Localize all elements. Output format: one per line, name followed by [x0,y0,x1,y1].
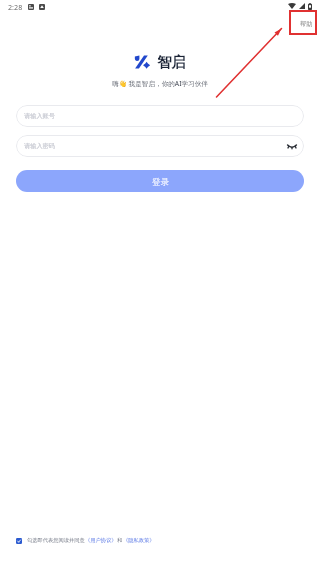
button[interactable]: 登录 [16,170,304,192]
button[interactable]: 请输入账号 [16,105,304,127]
staticText: 帮助 [300,20,313,28]
staticText: 请输入密码 [24,142,55,150]
staticText: 2:28 [8,2,23,12]
staticText: 请输入账号 [24,112,55,120]
button[interactable]: 《用户协议》 [85,537,117,544]
staticText: 智启 [157,53,186,71]
button[interactable]: Show password [286,140,298,152]
button[interactable]: 请输入密码 [16,135,304,157]
staticText: 和 [117,537,123,544]
staticText: 嗨👋 我是智启，你的AI学习伙伴 [0,79,320,88]
button[interactable]: Agree checkbox [16,538,22,544]
button[interactable]: 《隐私政策》 [123,537,155,544]
staticText: 勾选即代表您阅读并同意 [27,537,85,544]
staticText: 登录 [152,177,169,188]
button[interactable]: 帮助 [289,10,317,35]
